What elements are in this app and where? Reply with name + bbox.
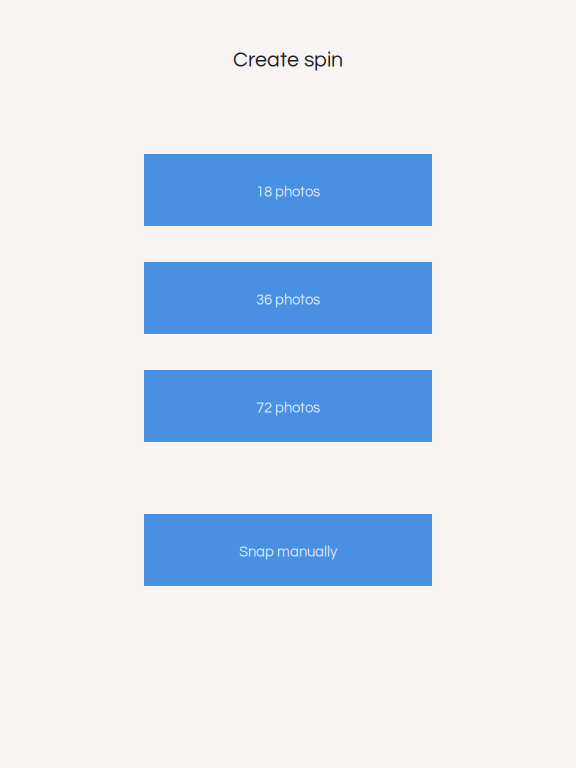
staticText: 18 photos [256,184,320,199]
button[interactable]: 36 photos [144,262,432,334]
staticText: 36 photos [256,292,320,307]
button[interactable]: Snap manually [144,514,432,586]
staticText: Create spin [233,49,343,71]
button[interactable]: 72 photos [144,370,432,442]
staticText: 72 photos [256,400,320,415]
button[interactable]: 18 photos [144,154,432,226]
staticText: Snap manually [239,544,337,559]
